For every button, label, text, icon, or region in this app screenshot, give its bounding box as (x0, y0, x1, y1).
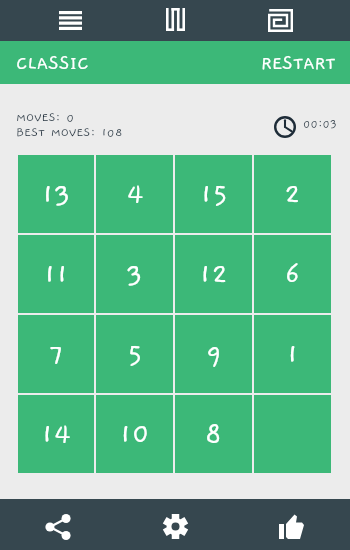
button[interactable]: RESTART (261, 52, 336, 73)
button[interactable]: CLASSIC (16, 52, 89, 73)
button[interactable]: Like (233, 499, 350, 550)
staticText: 5 (127, 339, 143, 370)
staticText: 1 (286, 339, 299, 370)
button[interactable]: 2 (254, 155, 331, 233)
staticText: 15 (200, 179, 228, 210)
button[interactable]: 5 (96, 315, 173, 393)
staticText: 3 (126, 259, 143, 290)
staticText: 6 (285, 259, 300, 290)
button[interactable]: 4 (96, 155, 173, 233)
button[interactable]: Settings (116, 499, 233, 550)
button[interactable]: 7 (18, 315, 94, 393)
button[interactable]: 13 (18, 155, 94, 233)
button[interactable]: 8 (175, 395, 252, 473)
button[interactable]: Spiral mode (258, 0, 302, 41)
button[interactable]: Menu (48, 0, 92, 41)
button[interactable]: 10 (96, 395, 173, 473)
staticText: 11 (43, 259, 69, 290)
staticText: RESTART (261, 53, 336, 74)
staticText: 10 (119, 419, 150, 450)
staticText: 7 (49, 339, 64, 370)
staticText: BEST MOVES: 108 (16, 125, 123, 139)
staticText: 13 (41, 179, 71, 210)
button[interactable]: 6 (254, 235, 331, 313)
staticText: 8 (205, 419, 222, 450)
button[interactable]: 11 (18, 235, 94, 313)
button[interactable]: Levels (153, 0, 197, 40)
staticText: 4 (126, 179, 144, 210)
staticText: 14 (41, 419, 71, 450)
button[interactable]: 9 (175, 315, 252, 393)
button[interactable]: 3 (96, 235, 173, 313)
staticText: 00:03 (303, 117, 337, 130)
button[interactable]: 15 (175, 155, 252, 233)
button[interactable]: 14 (18, 395, 94, 473)
staticText: CLASSIC (16, 53, 89, 74)
button[interactable]: Share (0, 499, 116, 550)
button[interactable]: 1 (254, 315, 331, 393)
staticText: MOVES: 0 (16, 110, 75, 124)
button[interactable]: 12 (175, 235, 252, 313)
staticText: 2 (284, 179, 301, 210)
staticText: 12 (199, 259, 228, 290)
staticText: 9 (206, 339, 222, 370)
